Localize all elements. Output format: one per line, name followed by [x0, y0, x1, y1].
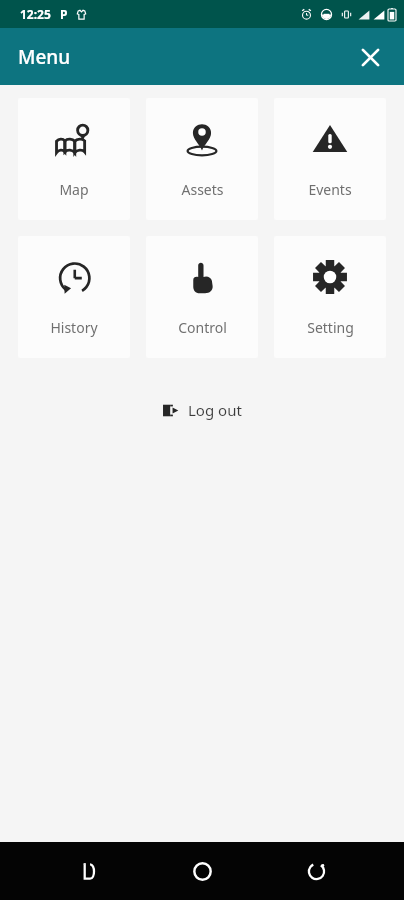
staticText: 12:25 — [20, 6, 51, 22]
staticText: Events — [308, 180, 352, 199]
staticText: P — [60, 6, 68, 22]
button[interactable]: Log out — [152, 394, 252, 426]
staticText: Setting — [307, 318, 354, 337]
staticText: History — [50, 318, 98, 337]
button[interactable]: Back — [62, 845, 114, 897]
button[interactable]: Recent apps — [290, 845, 342, 897]
staticText: Control — [178, 318, 227, 337]
staticText: Assets — [181, 180, 224, 199]
button[interactable]: History — [18, 236, 130, 358]
button[interactable]: Setting — [274, 236, 386, 358]
staticText: Log out — [188, 400, 242, 420]
button[interactable]: Home — [176, 845, 228, 897]
button[interactable]: Control — [146, 236, 258, 358]
staticText: Map — [59, 180, 89, 199]
button[interactable]: Close menu — [348, 35, 392, 79]
button[interactable]: Events — [274, 98, 386, 220]
staticText: Menu — [18, 44, 71, 70]
button[interactable]: Map — [18, 98, 130, 220]
button[interactable]: Assets — [146, 98, 258, 220]
